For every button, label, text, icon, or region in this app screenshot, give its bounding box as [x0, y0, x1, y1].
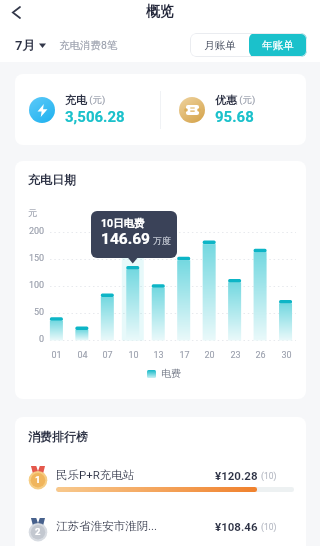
staticText: (元) — [237, 94, 256, 106]
staticText: 13 — [153, 350, 164, 361]
staticText: 民乐P+R充电站 — [56, 468, 135, 482]
staticText: ¥108.46 — [215, 520, 261, 533]
staticText: 年账单 — [262, 39, 294, 52]
staticText: 01 — [51, 350, 62, 361]
staticText: 30 — [281, 350, 292, 361]
staticText: 10 — [128, 350, 139, 361]
staticText: 充电日期 — [28, 172, 76, 187]
staticText: 充电 — [65, 93, 87, 107]
staticText: 月账单 — [204, 39, 236, 52]
staticText: 150 — [29, 253, 45, 264]
staticText: 200 — [29, 226, 45, 237]
staticText: 26 — [255, 350, 266, 361]
button[interactable]: 年账单 — [249, 33, 307, 57]
staticText: 消费排行榜 — [28, 429, 88, 444]
button[interactable]: 优惠 — [161, 74, 306, 145]
button[interactable]: 充电 — [15, 74, 160, 145]
staticText: (元) — [87, 94, 106, 106]
staticText: 2 — [35, 526, 41, 537]
staticText: 优惠 — [215, 93, 237, 107]
staticText: 3,506.28 — [65, 108, 125, 126]
staticText: 充电消费8笔 — [59, 39, 118, 52]
staticText: 江苏省淮安市淮阴... — [56, 519, 158, 533]
staticText: (10) — [261, 471, 277, 481]
staticText: 23 — [230, 350, 241, 361]
staticText: 1 — [35, 474, 41, 485]
staticText: 17 — [179, 350, 190, 361]
staticText: 0 — [39, 334, 45, 345]
staticText: 7月 — [15, 37, 36, 53]
staticText: 146.69 — [101, 230, 150, 248]
button[interactable]: 7月 — [15, 37, 46, 53]
button[interactable]: 2 — [15, 513, 306, 546]
staticText: 07 — [102, 350, 113, 361]
staticText: 元 — [28, 207, 37, 218]
button[interactable]: 月账单 — [190, 33, 249, 57]
staticText: 50 — [34, 307, 45, 318]
staticText: ¥120.28 — [215, 469, 261, 482]
staticText: (10) — [261, 522, 277, 532]
staticText: 95.68 — [215, 108, 254, 126]
button[interactable]: 1 — [15, 462, 306, 512]
staticText: 10日电费 — [101, 217, 145, 230]
staticText: 20 — [204, 350, 215, 361]
staticText: 04 — [77, 350, 88, 361]
staticText: 100 — [29, 280, 45, 291]
staticText: 万度 — [153, 235, 171, 246]
staticText: 电费 — [161, 367, 181, 380]
button[interactable] — [6, 2, 26, 22]
staticText: 概览 — [146, 3, 174, 21]
